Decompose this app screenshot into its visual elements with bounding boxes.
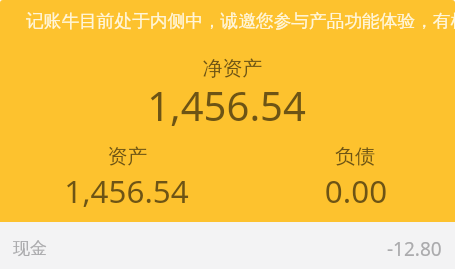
staticText: 1,456.54: [0, 169, 254, 212]
staticText: 负债: [255, 144, 455, 169]
button[interactable]: 资产: [0, 141, 255, 203]
staticText: 资产: [0, 144, 255, 169]
button[interactable]: 记账牛目前处于内侧中，诚邀您参与产品功能体验，有机会获得: [0, 0, 455, 40]
staticText: 现金: [13, 238, 47, 259]
staticText: 记账牛目前处于内侧中，诚邀您参与产品功能体验，有机会获得: [26, 10, 455, 32]
button[interactable]: 负债: [255, 141, 455, 203]
staticText: 净资产: [5, 56, 455, 81]
staticText: 0.00: [256, 169, 455, 212]
staticText: -12.80: [387, 236, 442, 262]
staticText: 1,456.54: [0, 78, 454, 132]
button[interactable]: 现金: [0, 222, 455, 269]
button[interactable]: 净资产: [0, 50, 455, 122]
